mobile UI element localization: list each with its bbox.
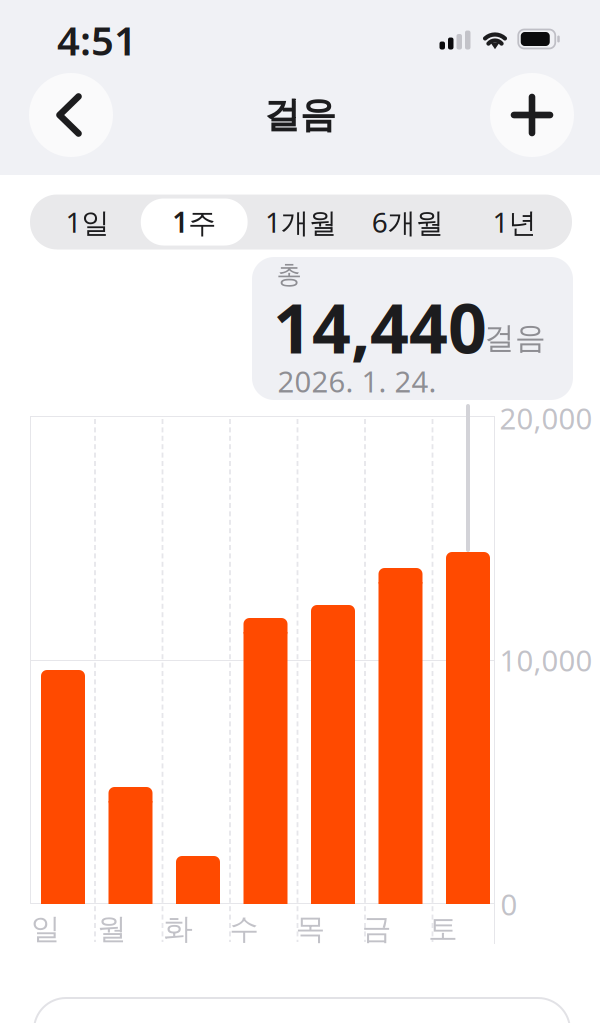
button[interactable]: 1개월 [248,198,354,245]
staticText: 토 [428,911,457,947]
staticText: 4:51 [57,13,137,66]
button[interactable]: 6개월 [354,198,461,245]
staticText: 걸음 [264,93,336,137]
staticText: 0 [500,884,517,923]
button[interactable]: 1주 [141,198,248,245]
staticText: 20,000 [499,398,592,437]
staticText: 수 [230,911,259,947]
button[interactable]: Add [490,73,574,157]
staticText: 1개월 [265,203,337,241]
button[interactable]: 1년 [461,198,568,245]
staticText: 10,000 [499,640,592,679]
staticText: 월 [97,911,126,947]
button[interactable]: Back [29,73,113,157]
staticText: 1년 [493,203,537,241]
staticText: 1주 [172,203,216,241]
staticText: 총 [276,259,301,290]
staticText: 걸음 [484,319,546,357]
staticText: 목 [296,911,325,947]
staticText: 금 [362,911,391,947]
staticText: 2026. 1. 24. [277,361,436,400]
staticText: 6개월 [372,203,444,241]
staticText: 1일 [65,203,109,241]
staticText: 화 [163,911,192,947]
staticText: 일 [31,911,60,947]
staticText: 14,440 [273,282,487,372]
button[interactable]: 1일 [34,198,141,245]
